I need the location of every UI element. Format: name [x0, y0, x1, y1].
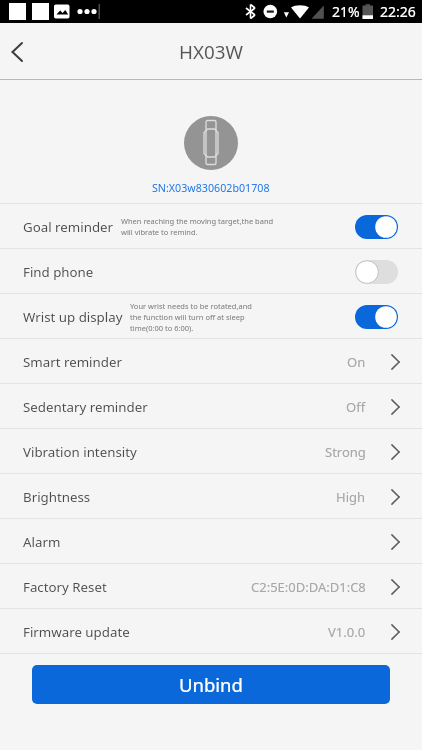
staticText: Firmware update	[23, 623, 130, 641]
button[interactable]: Sedentary reminder	[0, 384, 422, 429]
button[interactable]: Switch on	[355, 215, 398, 239]
button[interactable]: Factory Reset	[0, 564, 422, 609]
staticText: HX03W	[179, 39, 243, 65]
staticText: Brightness	[23, 488, 91, 506]
staticText: Wrist up display	[23, 308, 123, 326]
button[interactable]: Find phone	[0, 249, 422, 294]
button[interactable]: Unbind	[32, 665, 390, 704]
staticText: Your wrist needs to be rotated,and the f…	[130, 301, 305, 333]
button[interactable]: Smart reminder	[0, 339, 422, 384]
staticText: Find phone	[23, 263, 94, 281]
staticText: 21%	[332, 2, 360, 21]
staticText: When reaching the moving target,the band…	[121, 216, 296, 237]
staticText: Factory Reset	[23, 578, 107, 596]
button[interactable]: Alarm	[0, 519, 422, 564]
staticText: Goal reminder	[23, 218, 114, 236]
staticText: C2:5E:0D:DA:D1:C8	[251, 578, 366, 596]
staticText: High	[336, 488, 366, 506]
button[interactable]: Brightness	[0, 474, 422, 519]
staticText: Sedentary reminder	[23, 398, 148, 416]
staticText: Unbind	[179, 672, 243, 697]
button[interactable]: Goal reminder	[0, 204, 422, 249]
staticText: SN:X03w830602b01708	[152, 181, 270, 196]
staticText: Vibration intensity	[23, 443, 137, 461]
button[interactable]: Switch on	[355, 305, 398, 329]
staticText: Off	[346, 398, 366, 416]
staticText: V1.0.0	[328, 623, 366, 641]
button[interactable]: Back	[0, 30, 44, 74]
button[interactable]: Wrist up display	[0, 294, 422, 339]
button[interactable]: Vibration intensity	[0, 429, 422, 474]
staticText: 22:26	[380, 2, 416, 21]
staticText: Strong	[325, 443, 366, 461]
button[interactable]: Firmware update	[0, 609, 422, 654]
staticText: Smart reminder	[23, 353, 122, 371]
staticText: On	[347, 353, 366, 371]
button[interactable]: Switch off	[355, 260, 398, 284]
staticText: Alarm	[23, 533, 61, 551]
